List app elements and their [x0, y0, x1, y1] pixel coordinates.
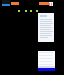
button[interactable]: Article card	[38, 51, 55, 71]
